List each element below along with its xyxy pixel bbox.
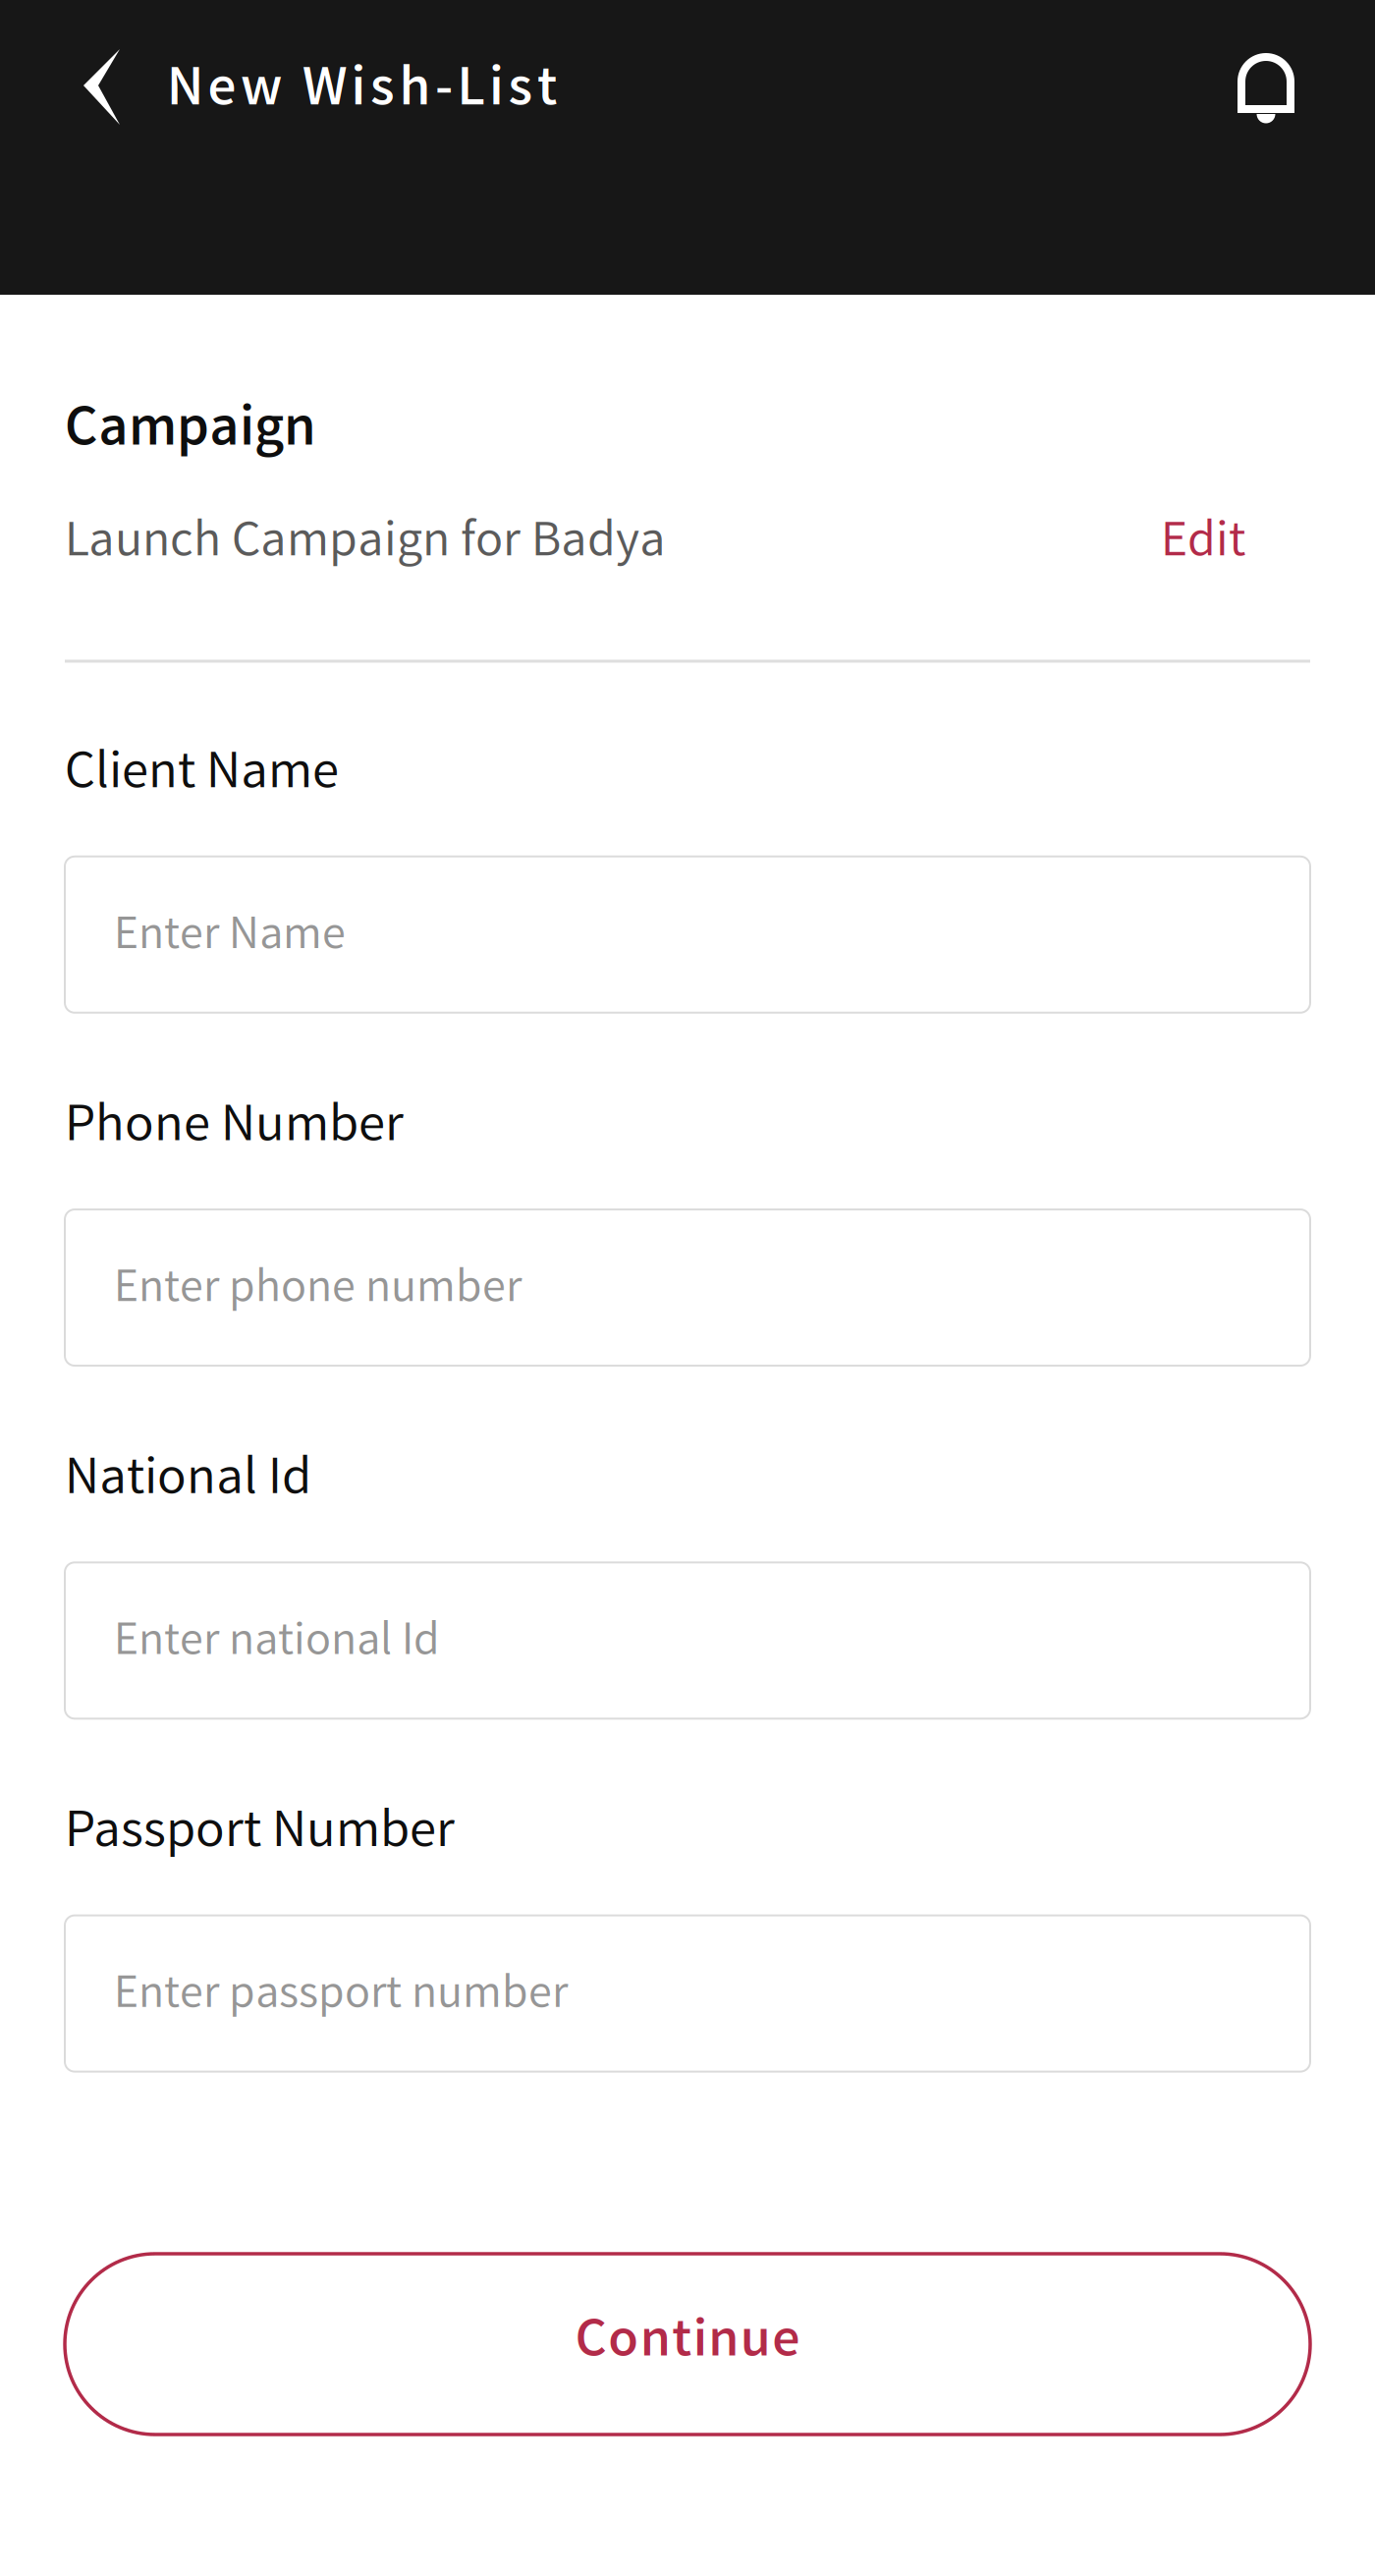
button[interactable]: Edit [1161,508,1310,582]
staticText: National Id [65,1443,311,1521]
staticText: Client Name [65,737,339,815]
staticText: Enter passport number [114,1963,568,2032]
button[interactable]: Enter phone number [65,1209,1310,1366]
button[interactable]: Continue [65,2254,1310,2435]
button[interactable]: Enter national Id [65,1562,1310,1719]
button[interactable]: Notifications [1237,49,1375,124]
staticText: Campaign [65,391,316,475]
staticText: Enter phone number [114,1257,522,1326]
button[interactable]: Enter passport number [65,1915,1310,2072]
staticText: Phone Number [65,1090,404,1168]
button[interactable]: Back [0,49,143,129]
staticText: Launch Campaign for Badya [65,508,666,582]
staticText: Passport Number [65,1796,455,1874]
button[interactable]: Enter Name [65,857,1310,1013]
staticText: Enter Name [114,904,346,973]
staticText: Continue [575,2304,800,2384]
staticText: New Wish-List [167,52,557,134]
staticText: Enter national Id [114,1610,440,1679]
staticText: Edit [1161,508,1245,582]
